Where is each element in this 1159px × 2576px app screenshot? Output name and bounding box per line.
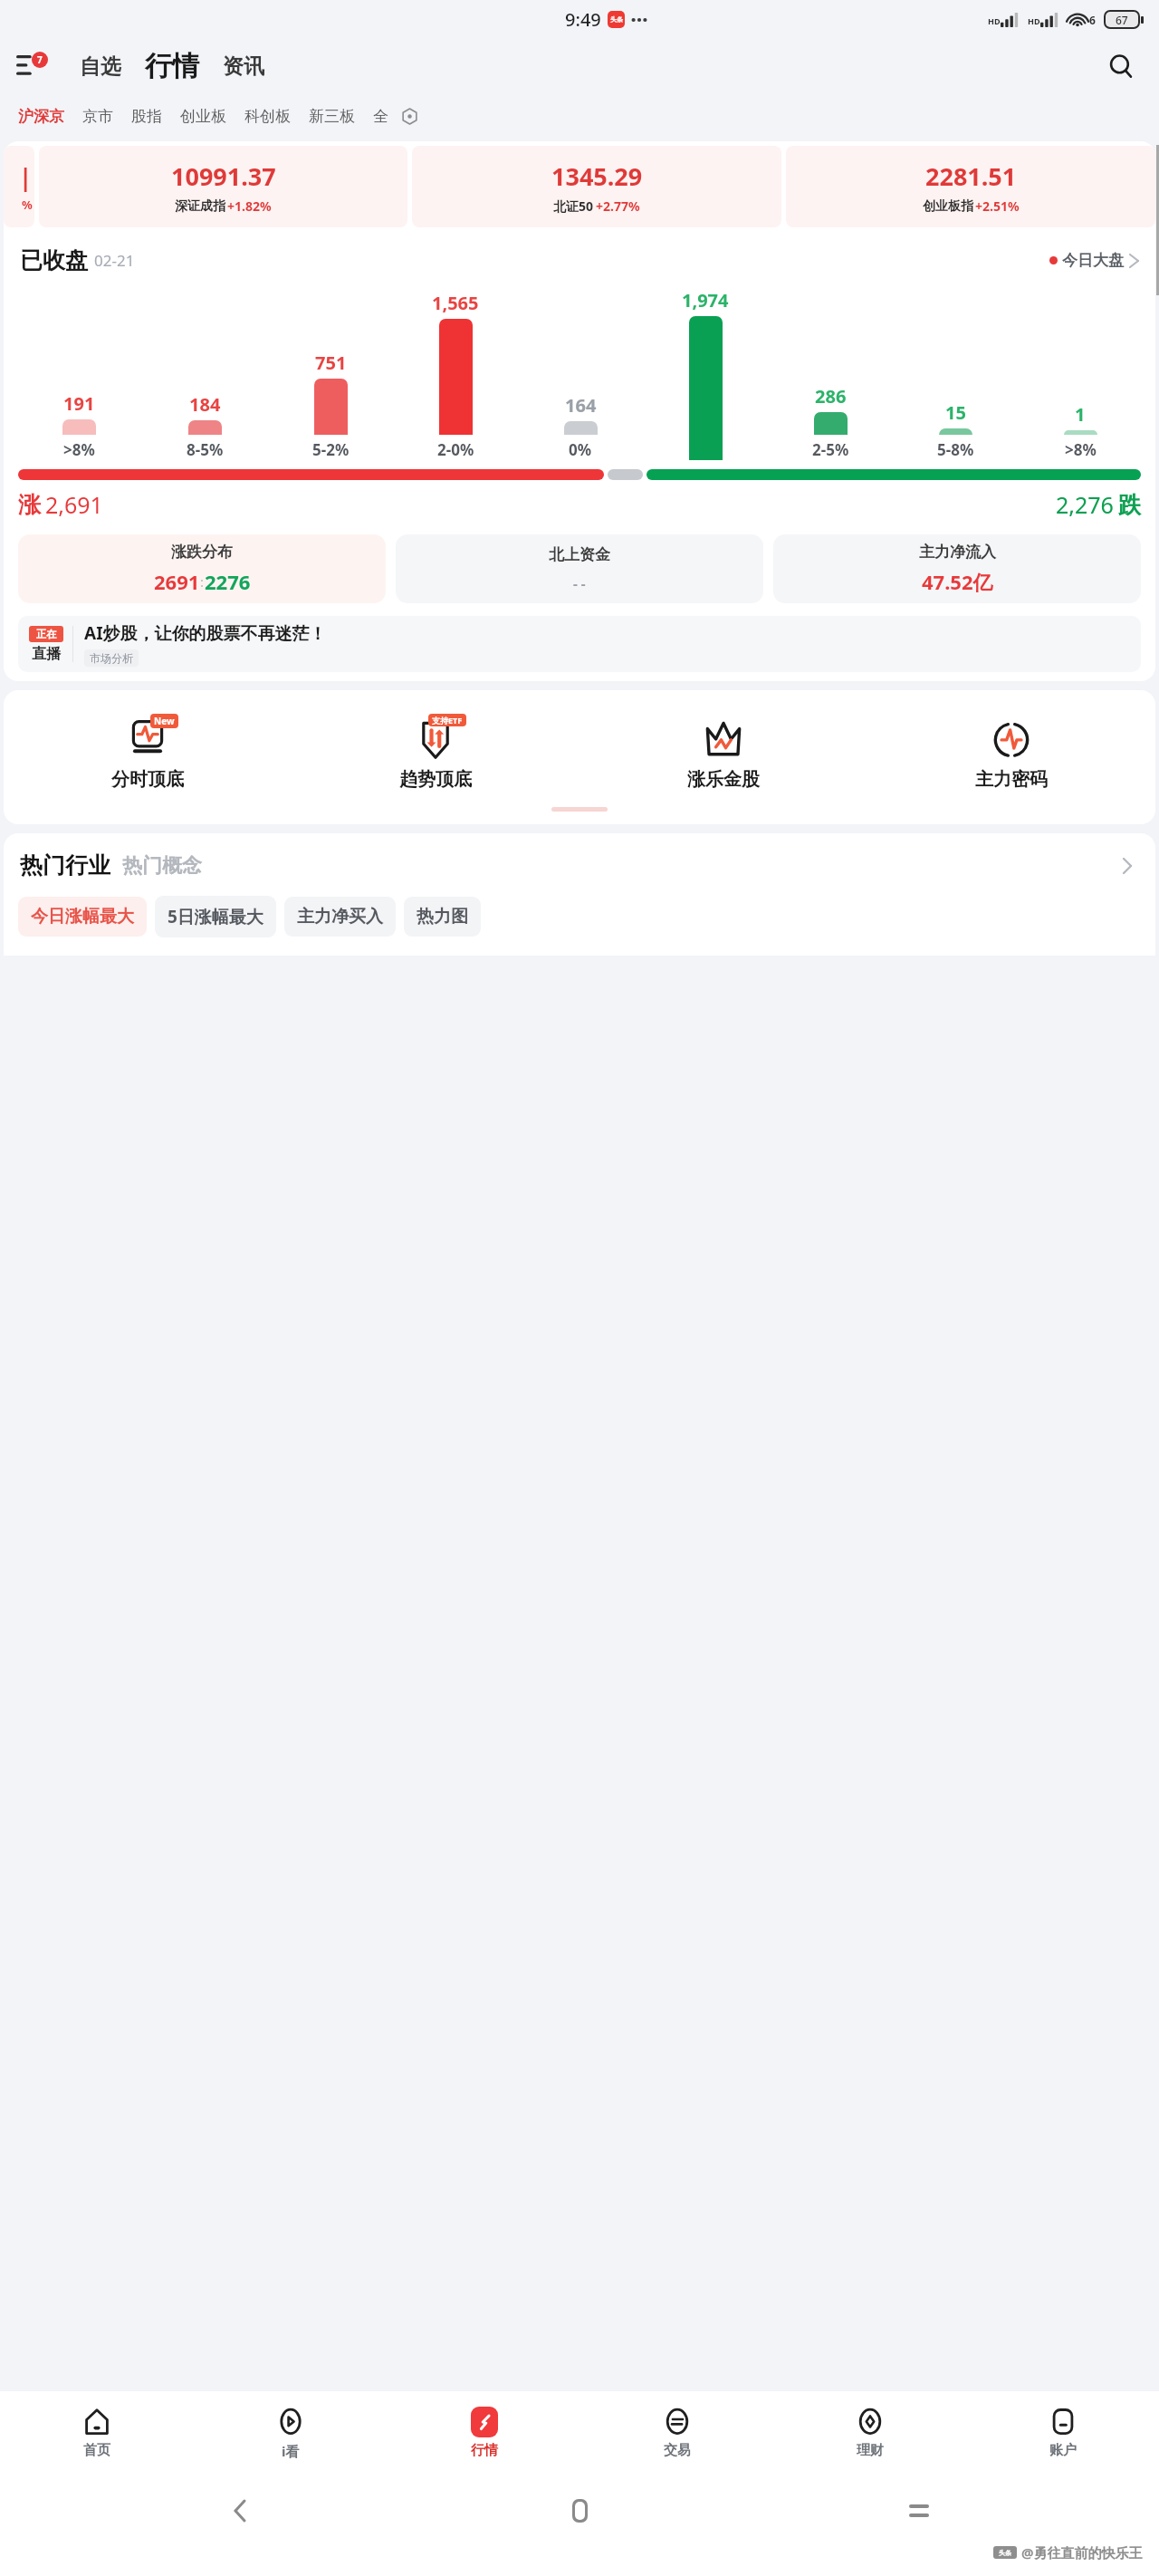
staticText: - -: [573, 574, 586, 592]
staticText: 交易: [664, 2442, 691, 2459]
button[interactable]: 1,565: [393, 291, 518, 460]
button[interactable]: 账户: [966, 2391, 1159, 2475]
staticText: +2.77%: [596, 197, 640, 215]
staticText: 8-5%: [187, 439, 224, 460]
staticText: |: [19, 161, 33, 193]
button[interactable]: Home: [560, 2491, 599, 2531]
button[interactable]: 资讯: [219, 48, 268, 85]
button[interactable]: 1: [1018, 402, 1143, 460]
staticText: 02-21: [94, 250, 135, 271]
button[interactable]: 正在: [18, 616, 1141, 672]
staticText: 创业板: [180, 107, 226, 126]
staticText: 趋势顶底: [399, 768, 472, 791]
button[interactable]: 交易: [580, 2391, 773, 2475]
button[interactable]: 15: [893, 400, 1018, 460]
button[interactable]: 首页: [0, 2391, 194, 2475]
staticText: 行情: [471, 2442, 498, 2459]
button[interactable]: New: [4, 710, 292, 794]
button[interactable]: 1345.29: [412, 146, 781, 227]
button[interactable]: 股指: [129, 101, 165, 131]
staticText: 科创板: [244, 107, 291, 126]
staticText: 头条: [610, 15, 623, 24]
staticText: 北上资金: [549, 545, 610, 564]
staticText: >8%: [1065, 439, 1097, 460]
button[interactable]: 行情: [388, 2391, 580, 2475]
button[interactable]: 主力密码: [867, 710, 1155, 794]
button[interactable]: 10991.37: [39, 146, 407, 227]
button[interactable]: 京市: [80, 101, 116, 131]
button[interactable]: 2281.51: [786, 146, 1155, 227]
staticText: 深证成指: [175, 198, 225, 215]
button[interactable]: 支持ETF: [292, 710, 579, 794]
staticText: 自选: [80, 53, 121, 80]
button[interactable]: 沪深京: [15, 101, 67, 131]
staticText: 热门行业: [20, 851, 110, 879]
staticText: AI炒股，让你的股票不再迷茫！: [84, 621, 327, 645]
staticText: 286: [815, 384, 847, 409]
staticText: 涨跌分布: [171, 543, 233, 562]
staticText: 北证50: [553, 197, 594, 215]
staticText: 新三板: [309, 107, 355, 126]
staticText: 热门概念: [122, 853, 202, 879]
button[interactable]: 主力净买入: [284, 897, 396, 937]
button[interactable]: i看: [194, 2391, 388, 2475]
button[interactable]: Back: [220, 2491, 260, 2531]
button[interactable]: 5日涨幅最大: [155, 896, 276, 937]
staticText: 正在: [36, 628, 56, 640]
button[interactable]: 热力图: [404, 897, 481, 937]
button[interactable]: 北上资金: [396, 534, 763, 603]
staticText: 涨: [18, 491, 41, 519]
staticText: 跌: [1118, 491, 1141, 519]
staticText: 热力图: [417, 906, 468, 928]
staticText: +2.51%: [975, 197, 1020, 215]
button[interactable]: 理财: [773, 2391, 966, 2475]
button[interactable]: Settings: [399, 106, 419, 126]
staticText: 主力净买入: [297, 906, 383, 928]
staticText: HD: [988, 15, 1001, 26]
button[interactable]: Recents: [899, 2491, 939, 2531]
button[interactable]: 今日大盘: [1049, 245, 1139, 275]
staticText: 5-2%: [312, 439, 350, 460]
button[interactable]: 191: [16, 391, 142, 460]
button[interactable]: 涨跌分布: [18, 534, 386, 603]
staticText: 首页: [83, 2442, 110, 2459]
staticText: >8%: [63, 439, 95, 460]
button[interactable]: Menu: [16, 48, 54, 84]
staticText: 头条: [999, 2549, 1011, 2557]
staticText: 今日涨幅最大: [31, 906, 134, 928]
staticText: 15: [945, 400, 966, 425]
button[interactable]: 今日涨幅最大: [18, 897, 147, 937]
staticText: 资讯: [223, 53, 264, 80]
staticText: %: [22, 197, 33, 213]
button[interactable]: Search: [1103, 48, 1139, 84]
button[interactable]: 热门行业: [20, 851, 110, 879]
staticText: 账户: [1049, 2442, 1077, 2459]
button[interactable]: 新三板: [306, 101, 358, 131]
button[interactable]: 184: [142, 392, 268, 460]
staticText: 今日大盘: [1062, 251, 1124, 270]
button[interactable]: 创业板: [177, 101, 229, 131]
staticText: 创业板指: [923, 198, 973, 215]
button[interactable]: 286: [768, 384, 893, 460]
button[interactable]: |: [4, 146, 34, 227]
button[interactable]: 热门概念: [122, 853, 202, 879]
button[interactable]: 科创板: [242, 101, 293, 131]
button[interactable]: 164: [518, 393, 643, 460]
button[interactable]: 主力净流入: [773, 534, 1141, 603]
button[interactable]: 751: [268, 351, 393, 460]
staticText: 沪深京: [18, 107, 64, 126]
button[interactable]: 自选: [76, 48, 125, 85]
button[interactable]: More: [1116, 854, 1139, 878]
staticText: 1,974: [682, 288, 729, 312]
staticText: 直播: [32, 645, 61, 663]
staticText: 1,565: [432, 291, 479, 315]
button[interactable]: 行情: [141, 47, 203, 85]
staticText: 全: [373, 107, 388, 126]
staticText: 股指: [131, 107, 162, 126]
staticText: 47.52亿: [922, 568, 993, 595]
button[interactable]: 全: [370, 101, 391, 131]
staticText: 751: [315, 351, 347, 375]
button[interactable]: 1,974: [643, 288, 768, 460]
button[interactable]: 涨乐金股: [579, 710, 867, 794]
staticText: 1: [1075, 402, 1086, 427]
